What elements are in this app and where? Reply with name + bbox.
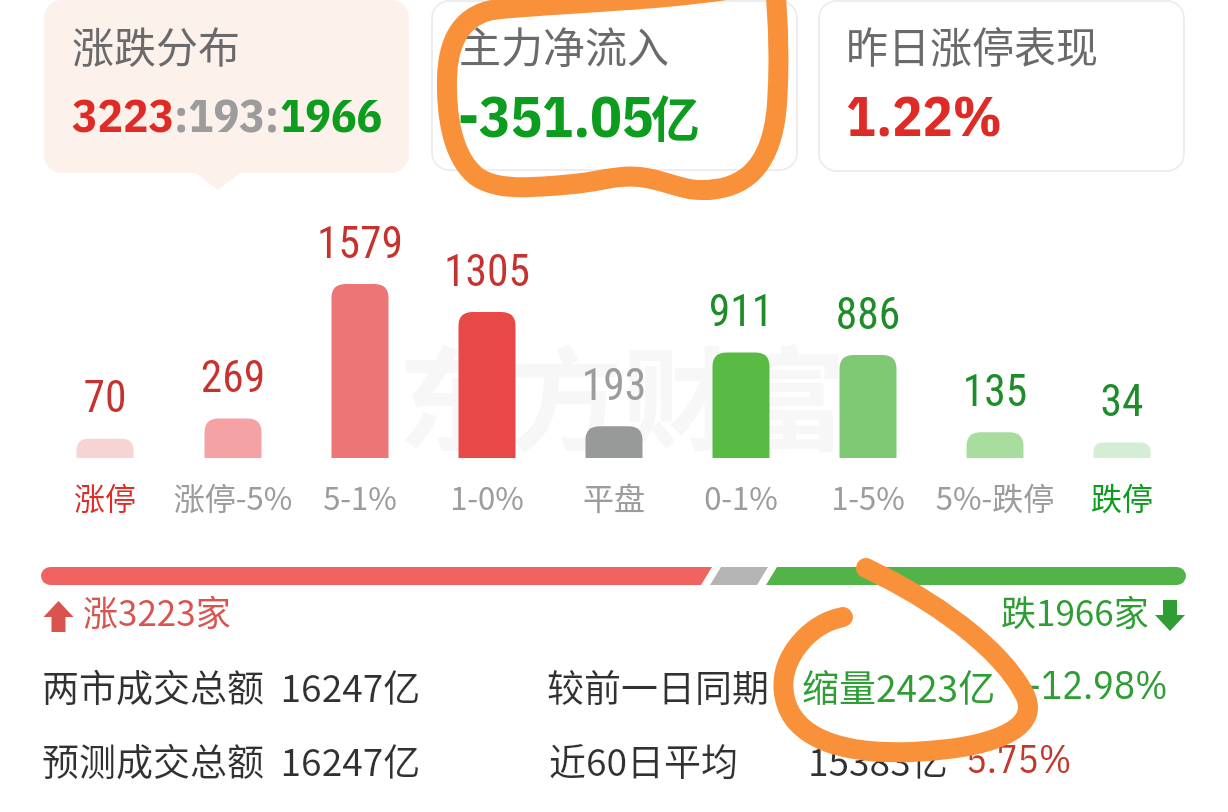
staticText: 1305: [397, 246, 577, 297]
staticText: 两市成交总额 16247亿: [42, 659, 421, 713]
staticText: 0-1%: [646, 474, 836, 519]
staticText: 70: [15, 372, 195, 423]
button[interactable]: 跌1966家: [1001, 597, 1185, 633]
staticText: 涨跌分布: [72, 14, 241, 75]
staticText: 东方财富: [398, 312, 846, 474]
staticText: 涨停-5%: [138, 474, 328, 519]
staticText: 1-0%: [392, 474, 582, 519]
button[interactable]: 5%-跌停 135: [932, 210, 1058, 520]
staticText: 跌停: [1027, 474, 1217, 519]
button[interactable]: 昨日涨停表现 1.22%: [818, 0, 1185, 172]
staticText: 886: [778, 289, 958, 340]
staticText: 主力净流入: [459, 14, 670, 75]
button[interactable]: 预测成交总额 16247亿: [36, 736, 1196, 794]
button[interactable]: 跌停 34: [1059, 210, 1185, 520]
button[interactable]: 涨3223家: [44, 597, 226, 633]
staticText: 缩量2423亿: [802, 659, 996, 713]
button[interactable]: 涨跌分布 3223:193:1966: [44, 0, 409, 173]
staticText: 较前一日同期: [547, 659, 769, 713]
staticText: 涨3223家: [83, 585, 231, 636]
button[interactable]: 5-1% 1579: [297, 210, 423, 520]
staticText: 269: [143, 352, 323, 403]
staticText: 911: [651, 286, 831, 337]
staticText: 34: [1032, 376, 1212, 427]
staticText: 1966: [280, 84, 382, 145]
staticText: 15383亿: [808, 733, 948, 787]
button[interactable]: 涨停-5% 269: [170, 210, 296, 520]
button[interactable]: 涨停 70: [42, 210, 168, 520]
staticText: 135: [905, 366, 1085, 417]
staticText: 1579: [270, 218, 450, 269]
staticText: :193:: [174, 84, 280, 145]
staticText: 涨停: [10, 474, 200, 519]
staticText: 平盘: [519, 474, 709, 519]
button[interactable]: 两市成交总额 16247亿: [36, 662, 1196, 720]
staticText: 近60日平均: [549, 733, 739, 787]
button[interactable]: 0-1% 911: [678, 210, 804, 520]
staticText: 预测成交总额 16247亿: [42, 733, 421, 787]
button[interactable]: 1-0% 1305: [424, 210, 550, 520]
staticText: 跌1966家: [1001, 585, 1149, 636]
button[interactable]: 平盘 193: [551, 210, 677, 520]
staticText: 1-5%: [773, 474, 963, 519]
button[interactable]: 1-5% 886: [805, 210, 931, 520]
other: Handwritten highlight: [0, 0, 1228, 812]
staticText: 3223: [72, 84, 174, 145]
staticText: 193: [524, 360, 704, 411]
staticText: 1.22%: [846, 79, 1003, 152]
staticText: 昨日涨停表现: [846, 14, 1099, 75]
staticText: 5-1%: [265, 474, 455, 519]
button[interactable]: 主力净流入 -351.05亿: [431, 0, 798, 171]
staticText: 5%-跌停: [900, 474, 1090, 519]
staticText: -12.98%: [1027, 659, 1168, 710]
staticText: 5.75%: [966, 733, 1072, 784]
staticText: -351.05: [458, 77, 654, 153]
staticText: 亿: [651, 81, 700, 152]
